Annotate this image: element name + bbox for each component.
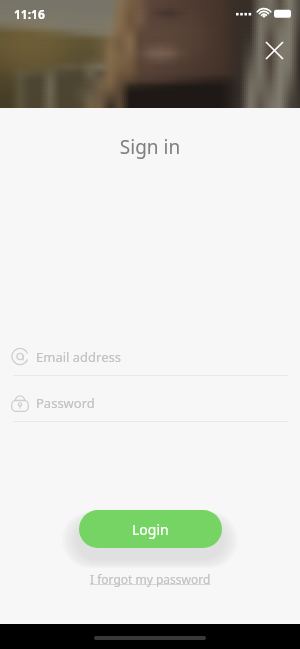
button[interactable]: Email address — [0, 345, 300, 369]
button[interactable]: Password — [0, 391, 300, 415]
staticText: Password — [36, 394, 95, 412]
staticText: Login — [132, 520, 169, 539]
button[interactable]: I forgot my password — [88, 570, 213, 588]
staticText: Sign in — [0, 134, 300, 160]
button[interactable]: Login — [79, 510, 222, 548]
staticText: Email address — [36, 348, 121, 366]
staticText: 11:16 — [14, 6, 45, 22]
button[interactable]: Close — [261, 37, 287, 63]
